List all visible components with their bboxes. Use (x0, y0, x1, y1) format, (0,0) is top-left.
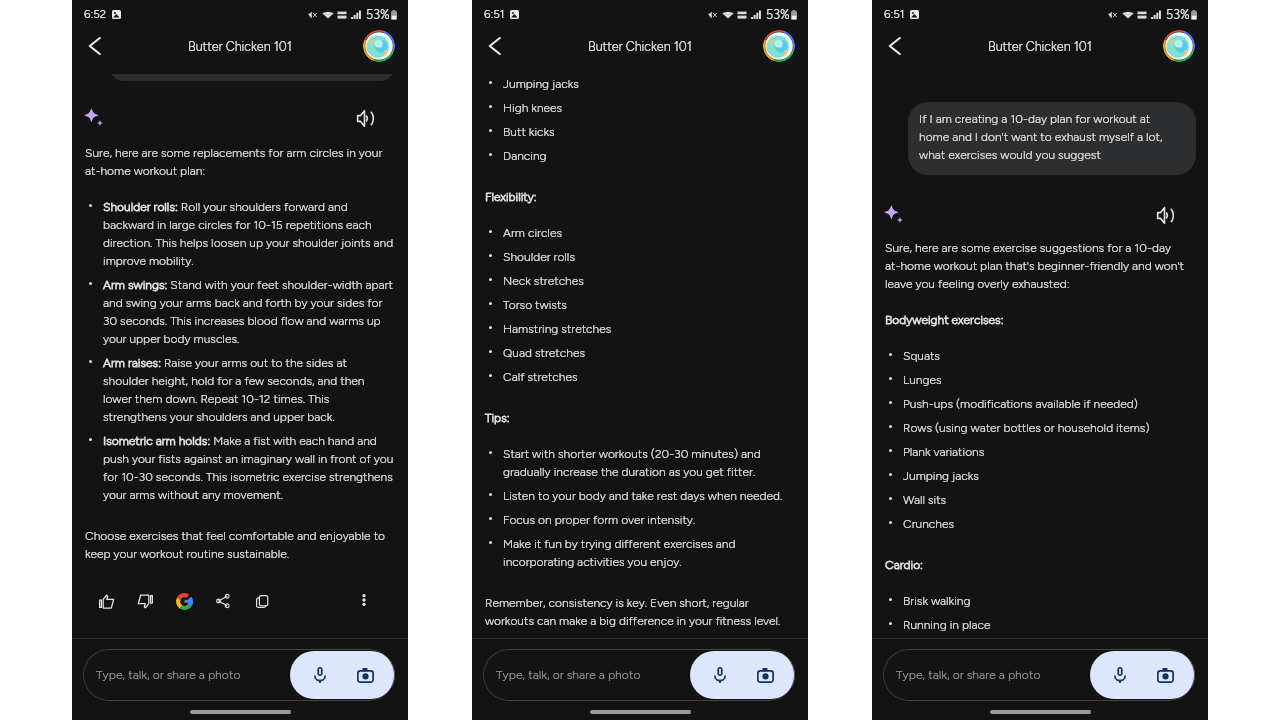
staticText: Running in place (903, 615, 991, 633)
button[interactable]: Account (363, 30, 395, 62)
staticText: Cardio: (885, 555, 923, 573)
button[interactable]: Read aloud (354, 109, 376, 127)
staticText: Arm raises: Raise your arms out to the s… (103, 353, 395, 425)
staticText: Crunches (903, 514, 955, 532)
staticText: Listen to your body and take rest days w… (503, 486, 783, 504)
staticText: Shoulder rolls (503, 247, 575, 265)
staticText: Sure, here are some exercise suggestions… (885, 238, 1185, 292)
staticText: Brisk walking (903, 591, 971, 609)
button[interactable]: Share (210, 588, 236, 614)
button[interactable]: More options (351, 587, 377, 613)
staticText: Push-ups (modifications available if nee… (903, 394, 1138, 412)
staticText: Jumping jacks (503, 74, 579, 92)
button[interactable]: Camera (752, 662, 778, 688)
staticText: Sure, here are some replacements for arm… (85, 143, 396, 179)
staticText: Wall sits (903, 490, 947, 508)
button[interactable]: Voice input (1107, 662, 1133, 688)
staticText: Shoulder rolls: Roll your shoulders forw… (103, 197, 396, 269)
button[interactable]: Google it (171, 588, 197, 614)
staticText: Make it fun by trying different exercise… (503, 534, 796, 570)
staticText: Squats (903, 346, 940, 364)
button[interactable]: Good response (93, 588, 119, 614)
staticText: Start with shorter workouts (20-30 minut… (503, 444, 796, 480)
staticText: 6:51 (484, 7, 505, 21)
button[interactable]: Back (882, 33, 908, 59)
staticText: Flexibility: (485, 187, 537, 205)
staticText: Quad stretches (503, 343, 585, 361)
staticText: Type, talk, or share a photo (496, 667, 641, 682)
button[interactable]: Camera (1152, 662, 1178, 688)
staticText: Butter Chicken 101 (588, 39, 692, 54)
staticText: 6:52 (84, 7, 107, 21)
button[interactable]: Camera (352, 662, 378, 688)
staticText: Jumping jacks (903, 466, 979, 484)
button[interactable]: Account (1163, 30, 1195, 62)
staticText: Tips: (485, 408, 510, 426)
staticText: Butter Chicken 101 (188, 39, 292, 54)
staticText: Remember, consistency is key. Even short… (485, 593, 796, 629)
staticText: 6:51 (884, 7, 905, 21)
button[interactable]: Copy (249, 588, 275, 614)
staticText: Neck stretches (503, 271, 584, 289)
button[interactable]: Read aloud (1154, 206, 1176, 224)
staticText: Isometric arm holds: Make a fist with ea… (103, 431, 396, 503)
staticText: Dancing (503, 146, 547, 164)
staticText: Arm circles (503, 223, 562, 241)
staticText: Bodyweight exercises: (885, 310, 1004, 328)
button[interactable]: Back (482, 33, 508, 59)
staticText: 53% (1166, 7, 1190, 22)
button[interactable]: Back (82, 33, 108, 59)
staticText: Type, talk, or share a photo (96, 667, 241, 682)
staticText: Choose exercises that feel comfortable a… (85, 526, 396, 562)
button[interactable]: Voice input (707, 662, 733, 688)
button[interactable]: Type, talk, or share a photo (483, 649, 795, 701)
button[interactable]: Type, talk, or share a photo (883, 649, 1195, 701)
staticText: Arm swings: Stand with your feet shoulde… (103, 275, 396, 347)
staticText: Plank variations (903, 442, 985, 460)
staticText: Butter Chicken 101 (988, 39, 1092, 54)
staticText: High knees (503, 98, 563, 116)
staticText: Hamstring stretches (503, 319, 612, 337)
button[interactable]: If I am creating a 10-day plan for worko… (908, 102, 1196, 175)
staticText: Calf stretches (503, 367, 578, 385)
button[interactable]: Bad response (132, 588, 158, 614)
staticText: Butt kicks (503, 122, 555, 140)
button[interactable]: Type, talk, or share a photo (83, 649, 395, 701)
staticText: Focus on proper form over intensity. (503, 510, 696, 528)
button[interactable]: Account (763, 30, 795, 62)
staticText: 53% (366, 7, 390, 22)
button[interactable]: Voice input (307, 662, 333, 688)
staticText: Lunges (903, 370, 942, 388)
staticText: Rows (using water bottles or household i… (903, 418, 1150, 436)
staticText: 53% (766, 7, 790, 22)
staticText: Torso twists (503, 295, 567, 313)
staticText: If I am creating a 10-day plan for worko… (919, 109, 1177, 163)
staticText: Type, talk, or share a photo (896, 667, 1041, 682)
